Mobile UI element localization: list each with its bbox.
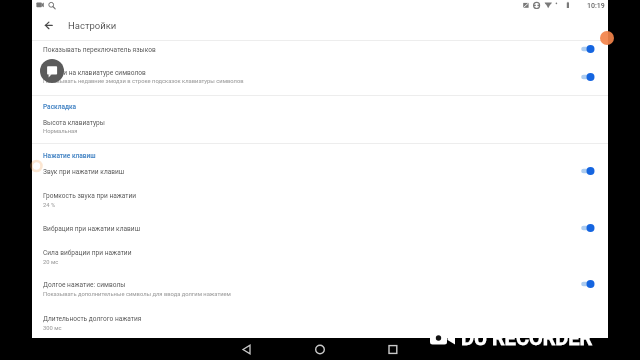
staticText: Эмодзи на клавиатуре символов: [43, 69, 146, 77]
staticText: Показывать переключатель языков: [43, 46, 156, 54]
staticText: Длительность долгого нажатия: [43, 315, 142, 323]
staticText: 24 %: [43, 202, 56, 209]
button[interactable]: Toggle switch: [578, 277, 602, 291]
staticText: Громкость звука при нажатии: [43, 192, 137, 200]
staticText: Показывать дополнительные символы для вв…: [43, 291, 231, 298]
staticText: Сила вибрации при нажатии: [43, 249, 132, 257]
button[interactable]: Toggle switch: [578, 164, 602, 178]
button[interactable]: [32, 272, 608, 302]
staticText: Высота клавиатуры: [43, 119, 105, 127]
button[interactable]: [32, 60, 608, 94]
button[interactable]: Stop recording: [40, 59, 64, 83]
button[interactable]: [32, 184, 608, 215]
button[interactable]: [32, 241, 608, 272]
staticText: Долгое нажатие: символы: [43, 281, 126, 289]
button[interactable]: [32, 110, 608, 142]
staticText: 300 мс: [43, 325, 62, 332]
staticText: Нажатие клавиш: [43, 152, 96, 160]
staticText: Звук при нажатии клавиш: [43, 168, 125, 176]
button[interactable]: [32, 215, 608, 241]
button[interactable]: [32, 302, 608, 337]
button[interactable]: Recent apps: [382, 339, 404, 360]
staticText: Показывать недавние эмодзи в строке подс…: [43, 78, 244, 85]
button[interactable]: [32, 159, 608, 184]
button[interactable]: Home: [309, 339, 331, 360]
button[interactable]: Back: [34, 14, 56, 36]
button[interactable]: Toggle switch: [578, 42, 602, 56]
button[interactable]: [32, 41, 608, 60]
staticText: Нормальная: [43, 128, 78, 135]
staticText: Раскладка: [43, 103, 77, 111]
button[interactable]: Back: [236, 339, 258, 360]
staticText: 20 мс: [43, 259, 59, 266]
staticText: Вибрация при нажатии клавиш: [43, 225, 140, 233]
button[interactable]: Toggle switch: [578, 221, 602, 235]
button[interactable]: Toggle switch: [578, 70, 602, 84]
staticText: Настройки: [68, 20, 117, 31]
staticText: DU RECORDER: [461, 326, 593, 349]
staticText: 10:19: [587, 2, 605, 10]
